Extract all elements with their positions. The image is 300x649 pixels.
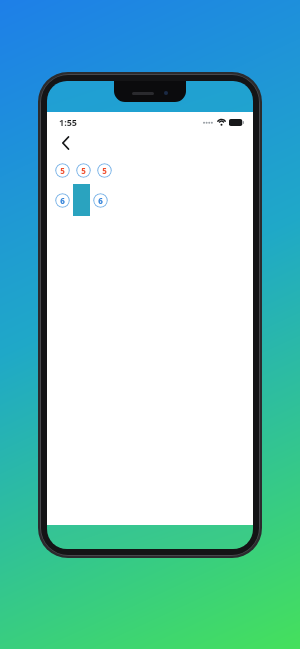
staticText: 1:55 <box>59 116 77 128</box>
button[interactable]: 5 <box>55 163 70 178</box>
button[interactable]: 6 <box>93 193 108 208</box>
staticText: 5 <box>81 165 86 176</box>
button[interactable]: 5 <box>97 163 112 178</box>
button[interactable]: Back <box>54 132 76 154</box>
staticText: 5 <box>102 165 107 176</box>
staticText: 6 <box>60 195 65 206</box>
staticText: 5 <box>60 165 65 176</box>
button[interactable]: 5 <box>76 163 91 178</box>
staticText: 6 <box>98 195 103 206</box>
button[interactable]: 6 <box>55 193 70 208</box>
